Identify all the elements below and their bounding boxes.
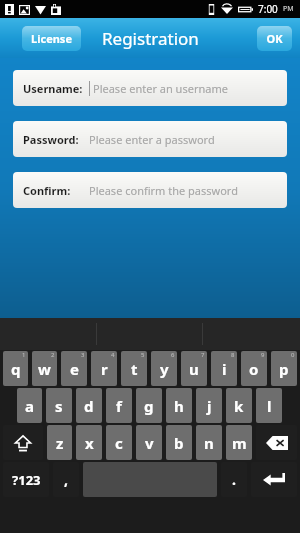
staticText: 4 — [111, 351, 115, 359]
button[interactable]: o — [241, 351, 267, 386]
button[interactable]: z — [47, 425, 72, 460]
button[interactable]: k — [226, 388, 252, 423]
button[interactable]: x — [76, 425, 102, 460]
button[interactable]: p — [271, 351, 297, 386]
button[interactable]: License — [22, 26, 81, 51]
button[interactable]: g — [136, 388, 162, 423]
button[interactable]: Username: — [13, 70, 287, 106]
button[interactable]: j — [196, 388, 222, 423]
staticText: a — [25, 396, 34, 416]
staticText: j — [207, 396, 212, 416]
staticText: m — [232, 433, 247, 453]
staticText: s — [55, 396, 63, 416]
staticText: h — [174, 396, 184, 416]
staticText: 6 — [171, 351, 175, 359]
staticText: , — [64, 470, 68, 489]
button[interactable]: f — [106, 388, 132, 423]
staticText: Password: — [23, 132, 79, 147]
staticText: PM — [283, 4, 294, 14]
staticText: l — [267, 396, 272, 416]
staticText: 1 — [22, 351, 26, 359]
staticText: 7:00 — [258, 2, 278, 16]
button[interactable]: u — [181, 351, 207, 386]
button[interactable]: c — [106, 425, 132, 460]
button[interactable]: q — [3, 351, 28, 386]
staticText: Confirm: — [23, 183, 71, 198]
staticText: p — [279, 359, 289, 379]
staticText: 9 — [261, 351, 265, 359]
button[interactable]: Shift — [3, 425, 43, 460]
staticText: g — [144, 396, 154, 416]
staticText: 0 — [291, 351, 295, 359]
button[interactable]: OK — [257, 26, 292, 51]
staticText: f — [116, 396, 122, 416]
staticText: n — [204, 433, 214, 453]
staticText: Please enter an username — [93, 81, 228, 96]
button[interactable]: m — [226, 425, 252, 460]
staticText: z — [56, 433, 64, 453]
staticText: 8 — [231, 351, 235, 359]
button[interactable]: Confirm: — [13, 172, 287, 208]
staticText: Username: — [23, 81, 83, 96]
staticText: u — [189, 359, 199, 379]
staticText: r — [101, 359, 108, 379]
staticText: . — [232, 470, 236, 489]
staticText: 7 — [201, 351, 205, 359]
button[interactable]: . — [221, 462, 247, 497]
button[interactable]: n — [196, 425, 222, 460]
staticText: c — [115, 433, 123, 453]
button[interactable]: d — [76, 388, 102, 423]
staticText: x — [85, 433, 94, 453]
button[interactable]: s — [46, 388, 72, 423]
button[interactable]: Enter — [251, 462, 297, 497]
button[interactable]: i — [211, 351, 237, 386]
staticText: Please enter a password — [89, 132, 215, 147]
staticText: e — [70, 359, 79, 379]
staticText: 2 — [51, 351, 55, 359]
button[interactable]: w — [32, 351, 57, 386]
staticText: i — [222, 359, 227, 379]
staticText: Please confirm the password — [89, 183, 238, 198]
staticText: d — [84, 396, 94, 416]
button[interactable]: , — [53, 462, 79, 497]
button[interactable]: y — [151, 351, 177, 386]
button[interactable]: t — [121, 351, 147, 386]
staticText: b — [174, 433, 184, 453]
staticText: ?123 — [12, 471, 41, 489]
button[interactable]: e — [61, 351, 87, 386]
staticText: 3 — [81, 351, 85, 359]
button[interactable]: h — [166, 388, 192, 423]
button[interactable]: Password: — [13, 121, 287, 157]
staticText: v — [145, 433, 154, 453]
staticText: t — [131, 359, 138, 379]
staticText: 5 — [141, 351, 145, 359]
staticText: o — [249, 359, 259, 379]
staticText: Registration — [102, 27, 199, 50]
button[interactable]: r — [91, 351, 117, 386]
button[interactable]: Backspace — [256, 425, 297, 460]
staticText: k — [234, 396, 244, 416]
button[interactable]: v — [136, 425, 162, 460]
staticText: License — [31, 31, 72, 46]
button[interactable]: l — [256, 388, 282, 423]
staticText: q — [11, 359, 21, 379]
button[interactable]: ?123 — [3, 462, 49, 497]
button[interactable]: a — [17, 388, 42, 423]
staticText: y — [160, 359, 169, 379]
staticText: w — [38, 359, 51, 379]
button[interactable]: b — [166, 425, 192, 460]
staticText: OK — [266, 31, 283, 46]
